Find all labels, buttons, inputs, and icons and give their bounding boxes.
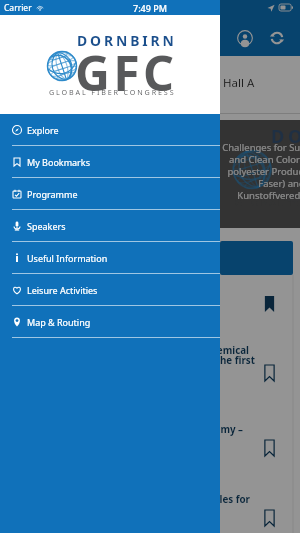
button[interactable]: Bookmark: [257, 292, 281, 316]
button[interactable]: Fibres in the circular economy –: [73, 423, 243, 436]
staticText: GLOBAL FIBER CONGRESS: [49, 87, 176, 97]
button[interactable]: Bookmark: [257, 506, 281, 530]
staticText: Explore: [27, 124, 59, 136]
staticText: My Bookmarks: [27, 156, 90, 168]
staticText: Challenges for Sustainable and Clean Col…: [219, 141, 300, 202]
staticText: GFC: [269, 134, 300, 220]
staticText: Carrier: [4, 2, 32, 14]
button[interactable]: Map & Routing: [0, 306, 220, 338]
staticText: Useful Information: [27, 252, 108, 264]
staticText: Fibres in the circular economy –: [73, 423, 243, 436]
button[interactable]: Bookmark: [257, 361, 281, 385]
staticText: 7:49 PM: [133, 2, 167, 14]
button[interactable]: process creating the first: [85, 354, 255, 367]
staticText: Programme: [27, 188, 78, 200]
staticText: GFC: [75, 39, 178, 105]
staticText: DORNBIRN: [271, 124, 300, 149]
button[interactable]: Leisure Activities: [0, 274, 220, 306]
button[interactable]: High performance textiles for: [80, 493, 250, 506]
button[interactable]: My Bookmarks: [0, 146, 220, 178]
staticText: Speakers: [27, 220, 66, 232]
button[interactable]: Explore: [0, 114, 220, 146]
staticText: High performance textiles for: [80, 493, 250, 506]
staticText: Map & Routing: [27, 316, 91, 328]
button[interactable]: Useful Information: [0, 242, 220, 274]
staticText: Chemical Recycling – a chemical: [79, 344, 249, 357]
button[interactable]: Programme: [0, 178, 220, 210]
staticText: GLOBAL FIBER CONGRESS: [235, 196, 300, 209]
staticText: Leisure Activities: [27, 284, 98, 296]
staticText: Hall A: [223, 75, 255, 91]
button[interactable]: Bookmark: [257, 436, 281, 460]
button[interactable]: Account: [232, 25, 257, 50]
button[interactable]: Chemical Recycling – a chemical: [79, 344, 249, 357]
button[interactable]: Refresh: [264, 25, 289, 50]
staticText: process creating the first: [85, 354, 255, 367]
button[interactable]: Speakers: [0, 210, 220, 242]
button[interactable]: [220, 241, 293, 275]
staticText: DORNBIRN: [77, 31, 177, 50]
